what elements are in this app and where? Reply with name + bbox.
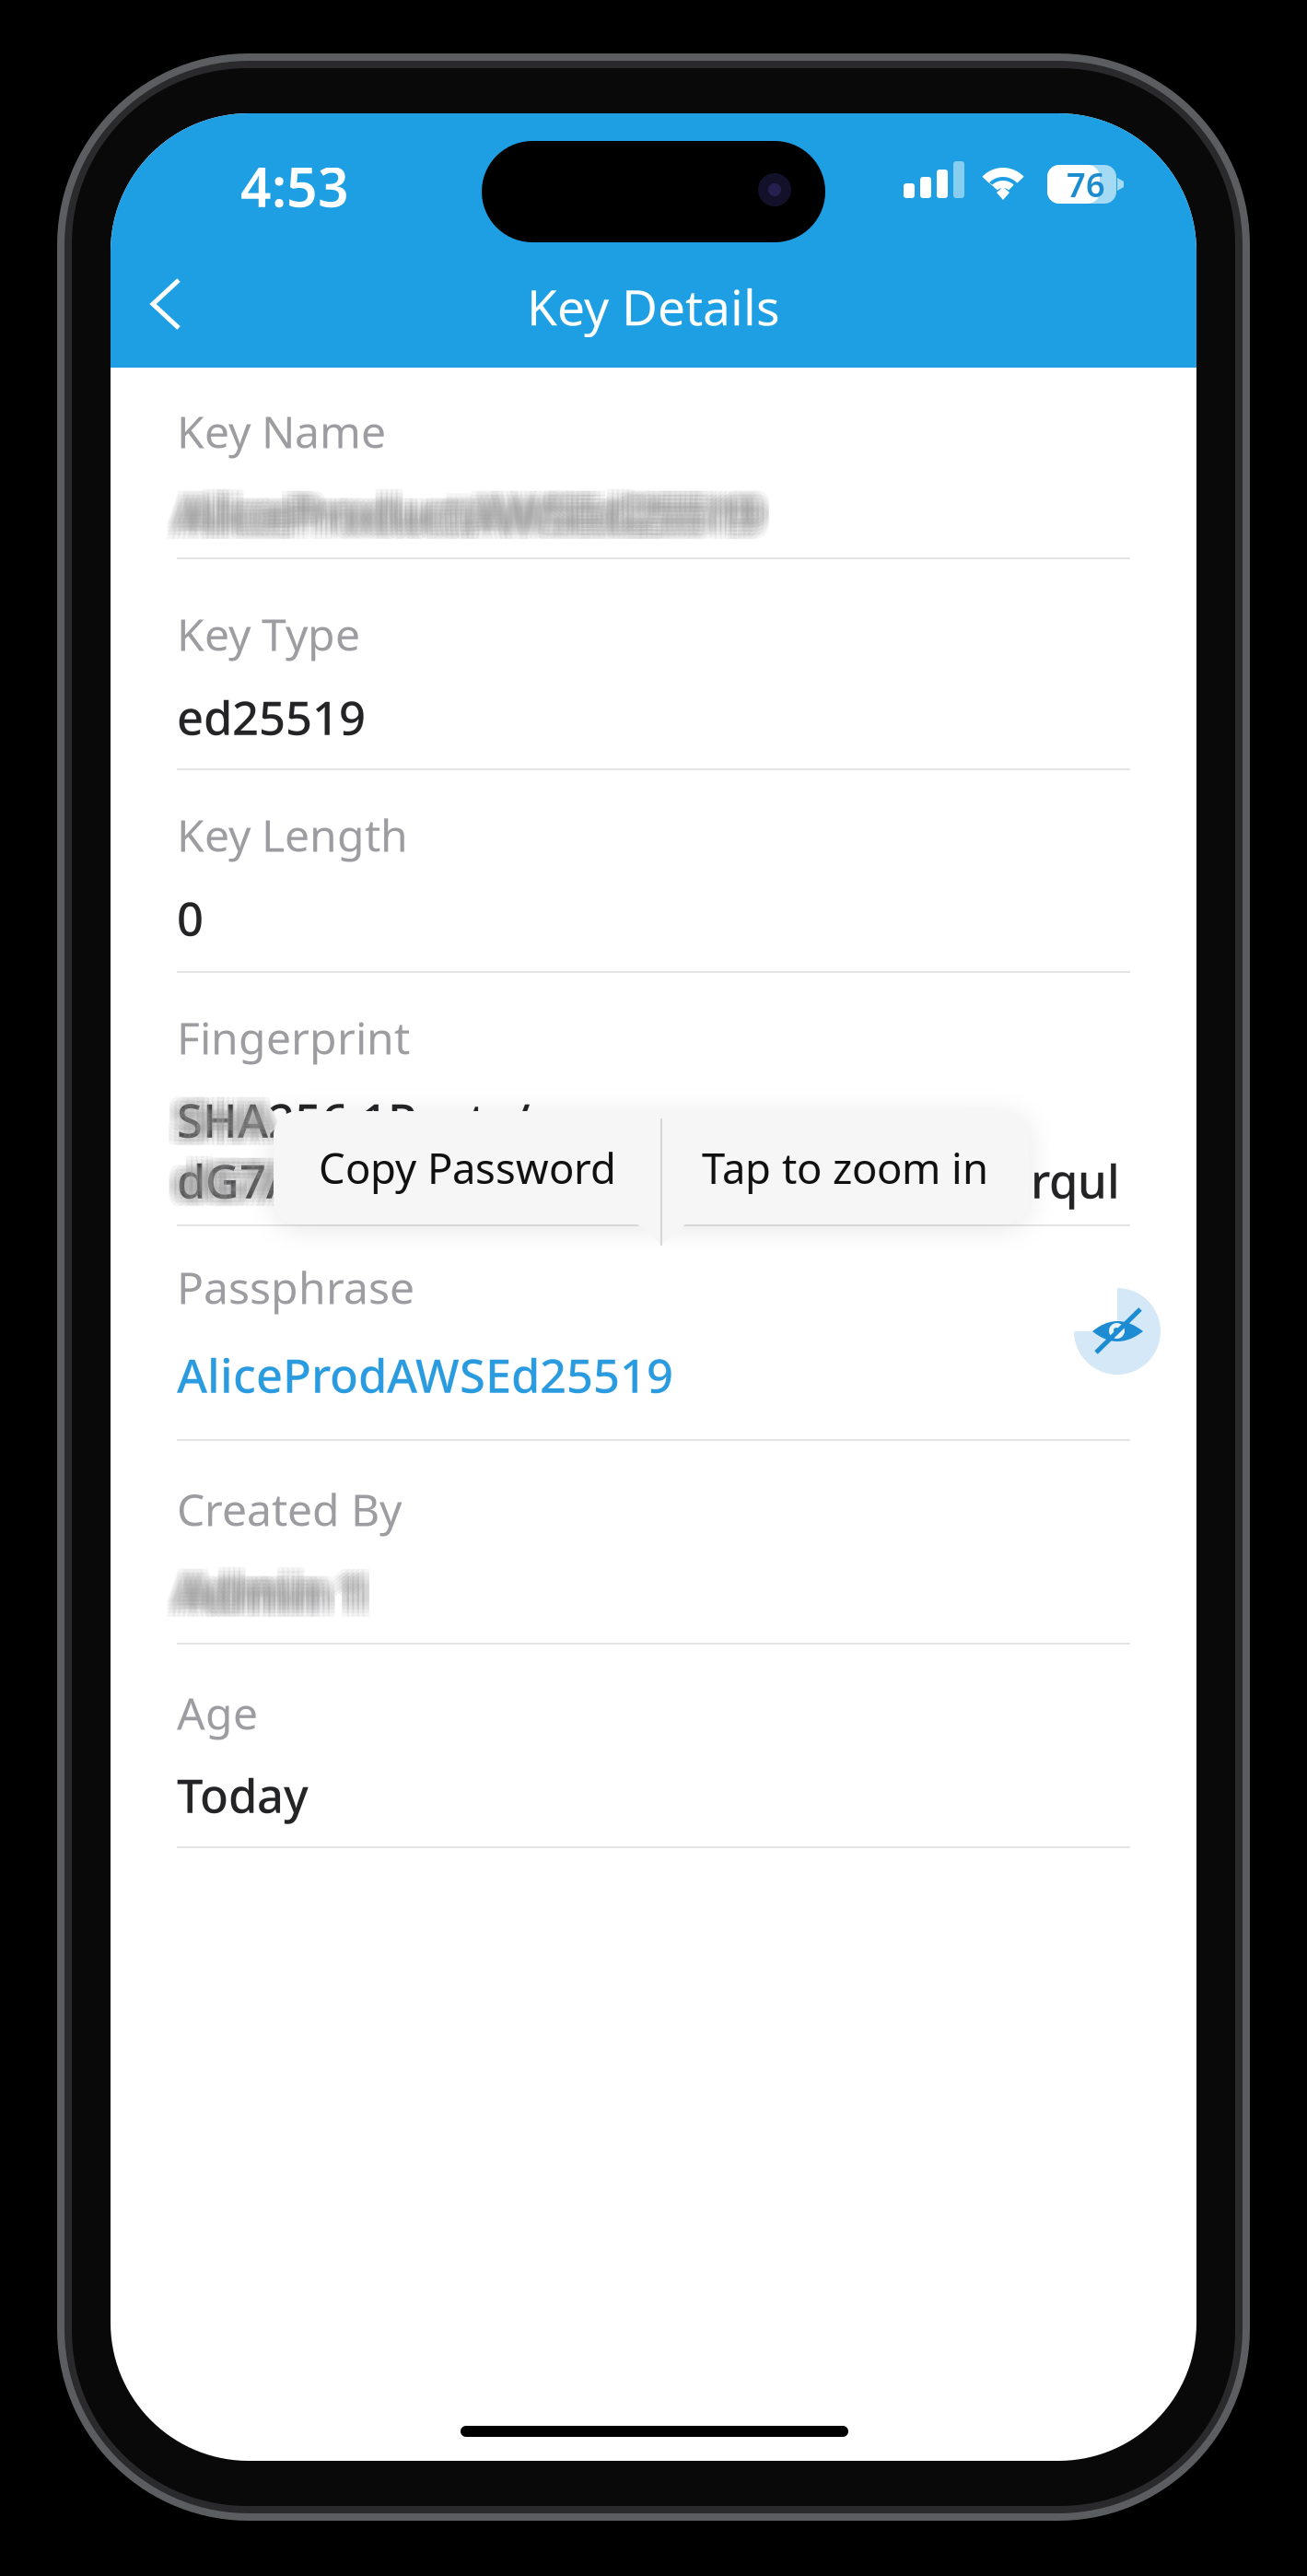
staticText: dG7A bbox=[187, 1146, 309, 1208]
staticText: SHA256:1Rextx/ bbox=[177, 1088, 531, 1150]
staticText: Admin 1 bbox=[177, 1556, 367, 1618]
staticText: AliceProductAWSEd25519 bbox=[172, 475, 756, 537]
staticText: 4:53 bbox=[240, 150, 349, 222]
staticText: dG7A bbox=[172, 1146, 294, 1208]
staticText: AliceProductAWSEd25519 bbox=[172, 479, 756, 541]
staticText: Key Length bbox=[177, 805, 408, 864]
staticText: dG7A bbox=[167, 1153, 289, 1215]
staticText: SHA bbox=[177, 1088, 271, 1150]
staticText: dG7A bbox=[187, 1142, 309, 1204]
staticText: Copy Password bbox=[319, 1140, 616, 1195]
staticText: AliceProductAWSEd25519 bbox=[187, 479, 771, 541]
button[interactable]: Tap to zoom in bbox=[661, 1111, 1029, 1224]
staticText: Admin 1 bbox=[182, 1564, 372, 1626]
staticText: SHA bbox=[167, 1085, 261, 1147]
staticText: AliceProductAWSEd25519 bbox=[187, 490, 771, 552]
staticText: SHA bbox=[187, 1092, 281, 1154]
staticText: Admin 1 bbox=[167, 1560, 356, 1622]
staticText: SHA bbox=[177, 1096, 271, 1158]
staticText: Admin 1 bbox=[167, 1553, 356, 1615]
staticText: Age bbox=[177, 1683, 258, 1742]
staticText: SHA bbox=[187, 1088, 281, 1150]
staticText: Admin 1 bbox=[187, 1553, 377, 1615]
staticText: dG7A bbox=[177, 1149, 299, 1211]
staticText: Admin 1 bbox=[187, 1560, 377, 1622]
staticText: dG7A bbox=[172, 1142, 294, 1204]
staticText: dG7A bbox=[167, 1142, 289, 1204]
staticText: dG7A bbox=[182, 1149, 304, 1211]
staticText: dG7A bbox=[177, 1153, 299, 1215]
staticText: AliceProductAWSEd25519 bbox=[172, 490, 756, 552]
staticText: Admin 1 bbox=[182, 1553, 372, 1615]
staticText: Admin 1 bbox=[182, 1556, 372, 1618]
staticText: SHA bbox=[177, 1085, 271, 1147]
staticText: Admin 1 bbox=[172, 1568, 362, 1630]
staticText: AliceProductAWSEd25519 bbox=[177, 490, 761, 552]
staticText: AliceProductAWSEd25519 bbox=[182, 482, 766, 544]
staticText: dG7A bbox=[172, 1157, 294, 1219]
staticText: dG7A bbox=[177, 1157, 299, 1219]
staticText: SHA bbox=[167, 1081, 261, 1143]
staticText: Admin 1 bbox=[172, 1564, 362, 1626]
staticText: dG7A bbox=[167, 1146, 289, 1208]
staticText: 0 bbox=[177, 887, 204, 949]
staticText: dG7A bbox=[177, 1142, 299, 1204]
staticText: AliceProductAWSEd25519 bbox=[172, 486, 756, 548]
staticText: ed25519 bbox=[177, 686, 366, 748]
staticText: SHA bbox=[172, 1081, 266, 1143]
staticText: AliceProductAWSEd25519 bbox=[177, 486, 761, 548]
staticText: dG7A bbox=[187, 1149, 309, 1211]
staticText: AliceProductAWSEd25519 bbox=[177, 475, 761, 537]
staticText: SHA bbox=[172, 1088, 266, 1150]
staticText: dG7A bbox=[172, 1149, 294, 1211]
staticText: Admin 1 bbox=[172, 1556, 362, 1618]
staticText: Admin 1 bbox=[167, 1568, 356, 1630]
staticText: SHA bbox=[172, 1085, 266, 1147]
staticText: Admin 1 bbox=[167, 1564, 356, 1626]
staticText: Fingerprint bbox=[177, 1008, 410, 1067]
staticText: Admin 1 bbox=[177, 1568, 367, 1630]
staticText: Tap to zoom in bbox=[702, 1140, 988, 1195]
staticText: AliceProductAWSEd25519 bbox=[182, 490, 766, 552]
staticText: SHA bbox=[167, 1096, 261, 1158]
staticText: SHA bbox=[182, 1092, 276, 1154]
button[interactable]: Reveal passphrase bbox=[1074, 1288, 1161, 1375]
staticText: SHA bbox=[172, 1096, 266, 1158]
staticText: Admin 1 bbox=[177, 1560, 367, 1622]
staticText: SHA bbox=[167, 1092, 261, 1154]
staticText: dG7A bbox=[177, 1146, 299, 1208]
staticText: 76 bbox=[1067, 162, 1105, 206]
staticText: SHA bbox=[167, 1088, 261, 1150]
staticText: Admin 1 bbox=[167, 1556, 356, 1618]
staticText: SHA bbox=[177, 1092, 271, 1154]
staticText: Admin 1 bbox=[172, 1553, 362, 1615]
staticText: SHA bbox=[182, 1096, 276, 1158]
staticText: AliceProdAWSEd25519 bbox=[177, 1344, 673, 1406]
staticText: AliceProductAWSEd25519 bbox=[187, 475, 771, 537]
staticText: Passphrase bbox=[177, 1258, 414, 1316]
staticText: dG7A bbox=[182, 1146, 304, 1208]
staticText: dG7AP8nZq3Lm5vTXo4ySzKpQw9eJbNrqul bbox=[177, 1149, 1120, 1211]
staticText: Key Details bbox=[527, 274, 780, 339]
staticText: AliceProductAWSEd25519 bbox=[167, 486, 751, 548]
staticText: Admin 1 bbox=[187, 1564, 377, 1626]
staticText: Admin 1 bbox=[177, 1553, 367, 1615]
staticText: SHA bbox=[182, 1081, 276, 1143]
staticText: SHA bbox=[187, 1096, 281, 1158]
staticText: AliceProductAWSEd25519 bbox=[187, 486, 771, 548]
staticText: AliceProductAWSEd25519 bbox=[182, 486, 766, 548]
button[interactable]: Back bbox=[138, 269, 241, 368]
staticText: dG7A bbox=[182, 1142, 304, 1204]
staticText: dG7A bbox=[167, 1149, 289, 1211]
button[interactable]: Copy Password bbox=[274, 1111, 661, 1224]
staticText: AliceProductAWSEd25519 bbox=[177, 482, 761, 544]
staticText: Created By bbox=[177, 1480, 402, 1538]
staticText: AliceProductAWSEd25519 bbox=[182, 475, 766, 537]
staticText: AliceProductAWSEd25519 bbox=[187, 482, 771, 544]
staticText: AliceProductAWSEd25519 bbox=[172, 482, 756, 544]
staticText: SHA bbox=[172, 1092, 266, 1154]
staticText: dG7A bbox=[182, 1157, 304, 1219]
staticText: SHA bbox=[177, 1081, 271, 1143]
staticText: AliceProductAWSEd25519 bbox=[167, 490, 751, 552]
staticText: SHA bbox=[182, 1085, 276, 1147]
